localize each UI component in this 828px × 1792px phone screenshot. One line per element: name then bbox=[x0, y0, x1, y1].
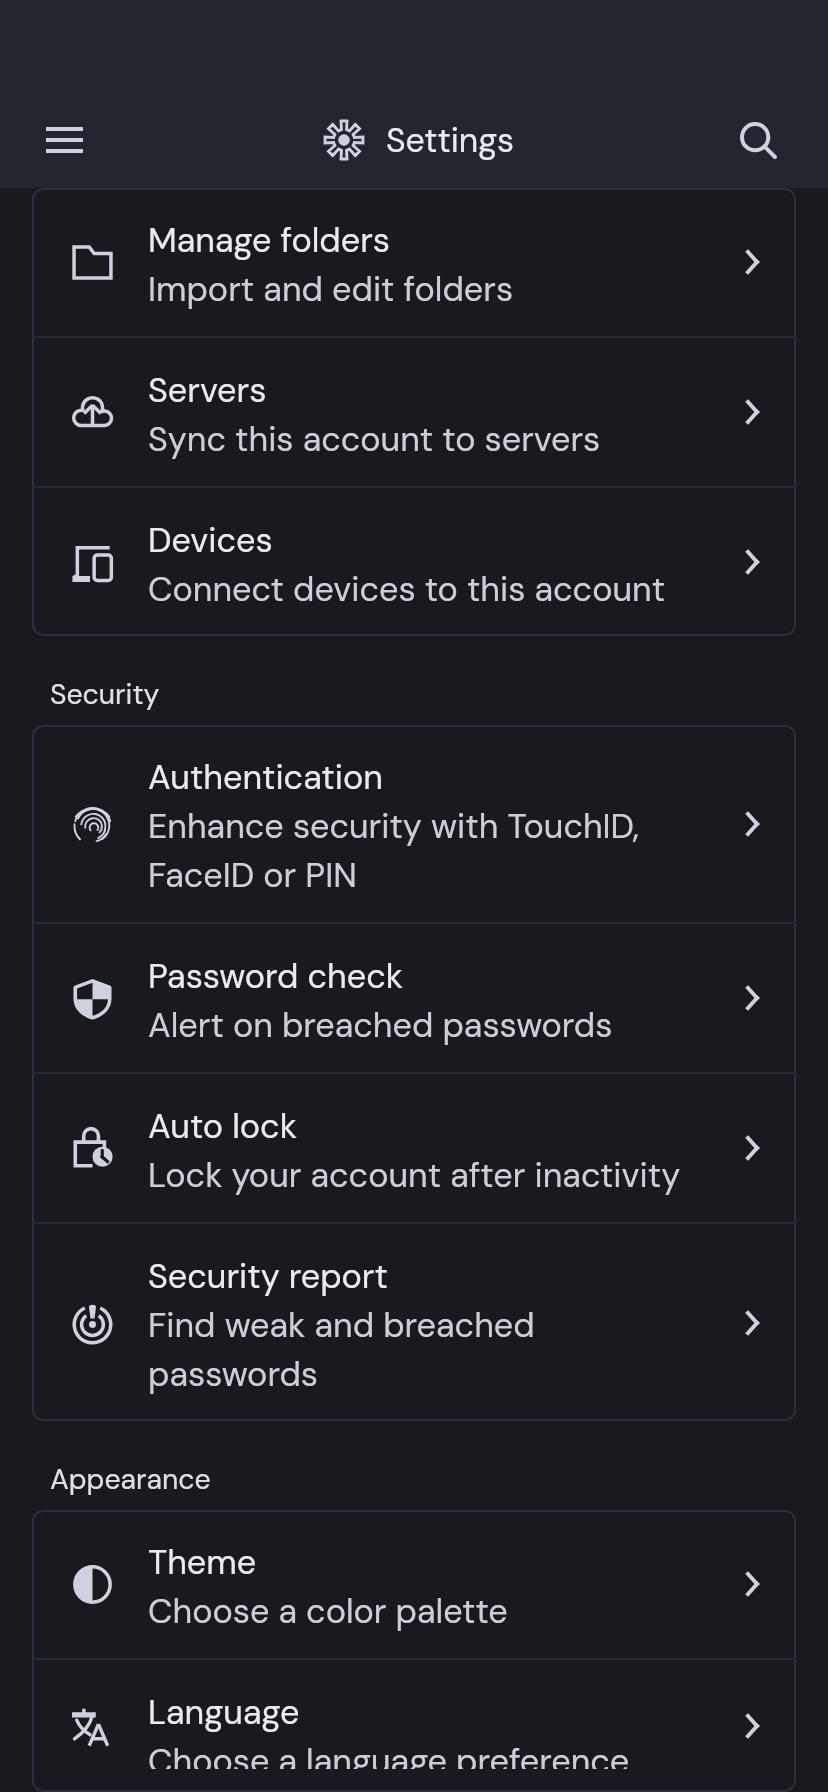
staticText: Security bbox=[50, 676, 160, 713]
staticText: Password check bbox=[148, 951, 403, 1000]
staticText: Auto lock bbox=[148, 1101, 297, 1150]
staticText: Connect devices to this account bbox=[148, 564, 666, 613]
staticText: Lock your account after inactivity bbox=[148, 1150, 681, 1199]
button[interactable]: Theme bbox=[32, 1510, 796, 1658]
button[interactable]: Authentication bbox=[32, 725, 796, 922]
button[interactable]: Search settings bbox=[720, 102, 796, 178]
staticText: Appearance bbox=[50, 1461, 211, 1498]
staticText: Security report bbox=[148, 1251, 388, 1300]
staticText: Authentication bbox=[148, 752, 383, 801]
staticText: Choose a language preference bbox=[148, 1736, 630, 1769]
staticText: Theme bbox=[148, 1537, 257, 1586]
button[interactable]: Auto lock bbox=[32, 1074, 796, 1222]
staticText: Sync this account to servers bbox=[148, 414, 601, 463]
button[interactable]: Servers bbox=[32, 338, 796, 486]
button[interactable]: Manage folders bbox=[32, 188, 796, 336]
staticText: Import and edit folders bbox=[148, 264, 514, 313]
button[interactable]: Open navigation menu bbox=[26, 102, 102, 178]
staticText: Choose a color palette bbox=[148, 1586, 508, 1635]
button[interactable]: Devices bbox=[32, 488, 796, 636]
button[interactable]: Security report bbox=[32, 1224, 796, 1421]
staticText: Servers bbox=[148, 365, 267, 414]
staticText: Language bbox=[148, 1687, 300, 1736]
button[interactable]: Password check bbox=[32, 924, 796, 1072]
staticText: Enhance security with TouchID, FaceID or… bbox=[148, 801, 693, 899]
staticText: Alert on breached passwords bbox=[148, 1000, 613, 1049]
staticText: Devices bbox=[148, 515, 273, 564]
button[interactable]: Language bbox=[32, 1660, 796, 1792]
staticText: Find weak and breached passwords bbox=[148, 1300, 693, 1398]
staticText: Manage folders bbox=[148, 215, 390, 264]
staticText: Settings bbox=[386, 118, 515, 162]
